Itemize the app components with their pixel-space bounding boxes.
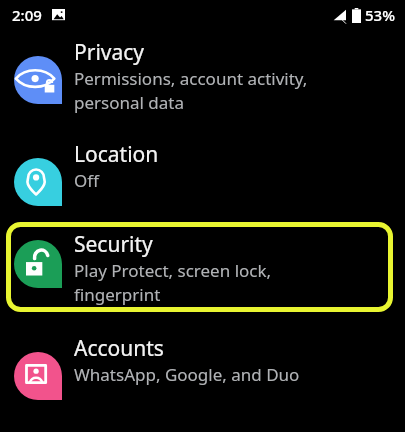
button[interactable]: Accounts [0,312,405,400]
button[interactable]: Location [0,114,405,206]
staticText: Play Protect, screen lock, fingerprint [74,259,272,306]
staticText: Security [74,230,153,259]
button[interactable]: Privacy [0,30,405,114]
staticText: Permissions, account activity, personal … [74,67,308,114]
button[interactable]: Security [6,222,393,312]
staticText: Privacy [74,38,145,67]
staticText: Location [74,140,159,169]
staticText: Off [74,169,99,192]
staticText: 53% [365,5,395,25]
staticText: Accounts [74,334,164,363]
staticText: WhatsApp, Google, and Duo [74,363,300,386]
other: Screenshot [52,9,65,22]
staticText: 2:09 [12,5,42,25]
